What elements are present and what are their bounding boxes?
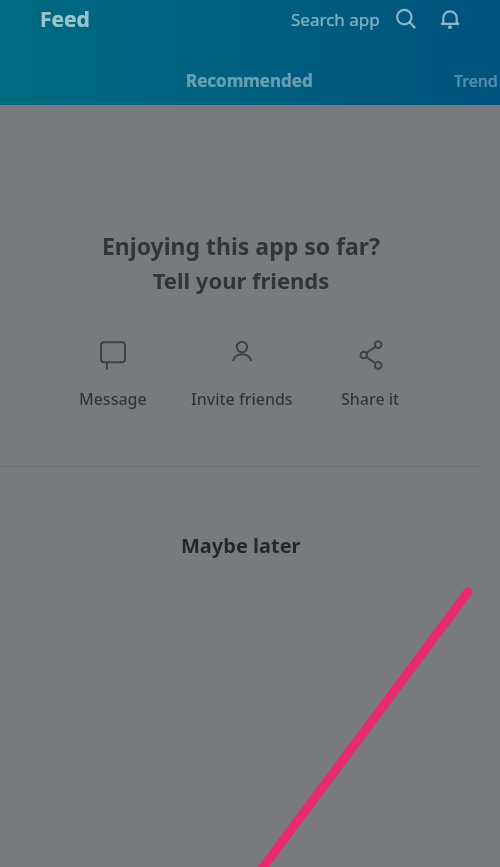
button[interactable]: Recommended: [166, 56, 333, 105]
button[interactable]: Share it: [337, 333, 404, 412]
staticText: Maybe later: [181, 532, 301, 559]
staticText: Tell your friends: [0, 265, 482, 295]
button[interactable]: Invite friends: [187, 333, 297, 412]
staticText: Message: [79, 388, 147, 410]
button[interactable]: Search app: [287, 2, 384, 37]
staticText: Trend: [454, 70, 498, 92]
button[interactable]: Notifications: [430, 0, 470, 38]
staticText: Search app: [291, 8, 380, 31]
button[interactable]: Message: [75, 333, 151, 412]
button[interactable]: Maybe later: [0, 523, 482, 567]
staticText: Share it: [341, 388, 400, 410]
staticText: Invite friends: [191, 388, 293, 410]
button[interactable]: Search: [386, 0, 426, 38]
button[interactable]: Trend: [333, 56, 500, 105]
staticText: Feed: [40, 5, 90, 34]
staticText: Enjoying this app so far?: [0, 230, 482, 261]
staticText: Recommended: [186, 69, 313, 92]
